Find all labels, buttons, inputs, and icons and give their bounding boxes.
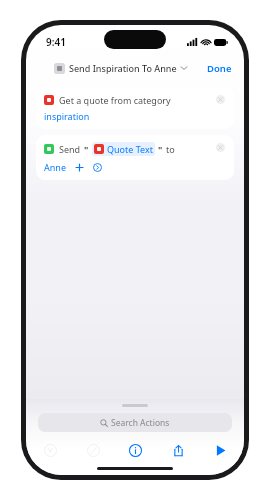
button[interactable]: Variables (40, 440, 60, 460)
button[interactable]: Anne (44, 161, 66, 173)
button[interactable]: Get a quote from category (36, 87, 234, 129)
staticText: " (84, 143, 89, 155)
button[interactable]: Remove action (215, 94, 226, 105)
staticText: " (158, 143, 163, 155)
button[interactable]: Cancel (83, 440, 103, 460)
button[interactable]: Remove action (215, 142, 226, 153)
staticText: 9:41 (46, 35, 66, 49)
staticText: Quote Text (107, 143, 153, 155)
staticText: Send (59, 143, 81, 155)
button[interactable]: inspiration (44, 110, 90, 122)
button[interactable]: More options (92, 162, 103, 173)
staticText: Get a quote from category (59, 94, 171, 106)
button[interactable]: Add recipient (74, 162, 85, 173)
button[interactable]: Send Inspiration To Anne (38, 62, 203, 74)
button[interactable]: Details (125, 440, 145, 460)
button[interactable]: Share (168, 440, 188, 460)
staticText: Search Actions (111, 417, 170, 429)
button[interactable]: Send (36, 135, 234, 180)
button[interactable]: Search Actions (38, 413, 232, 432)
staticText: to (166, 143, 175, 155)
button[interactable]: Run shortcut (210, 440, 230, 460)
staticText: Send Inspiration To Anne (69, 62, 177, 74)
button[interactable]: Done (203, 62, 232, 75)
button[interactable]: Quote Text (92, 142, 155, 156)
